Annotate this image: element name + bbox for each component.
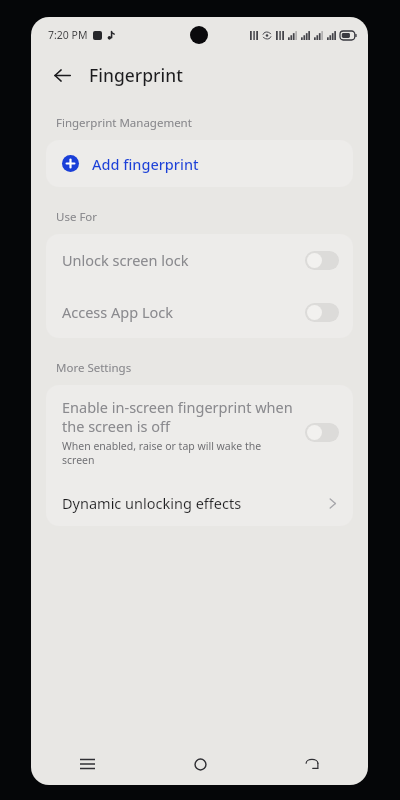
button[interactable]: Add fingerprint (46, 140, 353, 187)
staticText: When enabled, raise or tap will wake the… (62, 439, 295, 467)
staticText: Fingerprint Management (56, 115, 192, 131)
staticText: Enable in-screen fingerprint when the sc… (62, 397, 295, 436)
button[interactable]: Toggle (305, 303, 339, 322)
button[interactable]: Toggle (305, 423, 339, 442)
staticText: Fingerprint (89, 63, 183, 87)
staticText: Access App Lock (62, 302, 305, 322)
button[interactable]: Dynamic unlocking effects (46, 480, 353, 526)
button[interactable]: Access App Lock (46, 286, 353, 338)
button[interactable]: Unlock screen lock (46, 234, 353, 286)
staticText: More Settings (56, 360, 132, 376)
button[interactable]: Enable in-screen fingerprint when the sc… (46, 385, 353, 480)
staticText: Dynamic unlocking effects (62, 493, 329, 513)
staticText: Unlock screen lock (62, 250, 305, 270)
button[interactable]: Toggle (305, 251, 339, 270)
button[interactable]: Back (256, 743, 368, 785)
staticText: Use For (56, 209, 98, 225)
button[interactable]: Home (144, 743, 256, 785)
staticText: Add fingerprint (92, 154, 199, 174)
button[interactable]: Recent apps (31, 743, 144, 785)
button[interactable]: Back (45, 58, 79, 92)
staticText: 7:20 PM (48, 28, 88, 42)
